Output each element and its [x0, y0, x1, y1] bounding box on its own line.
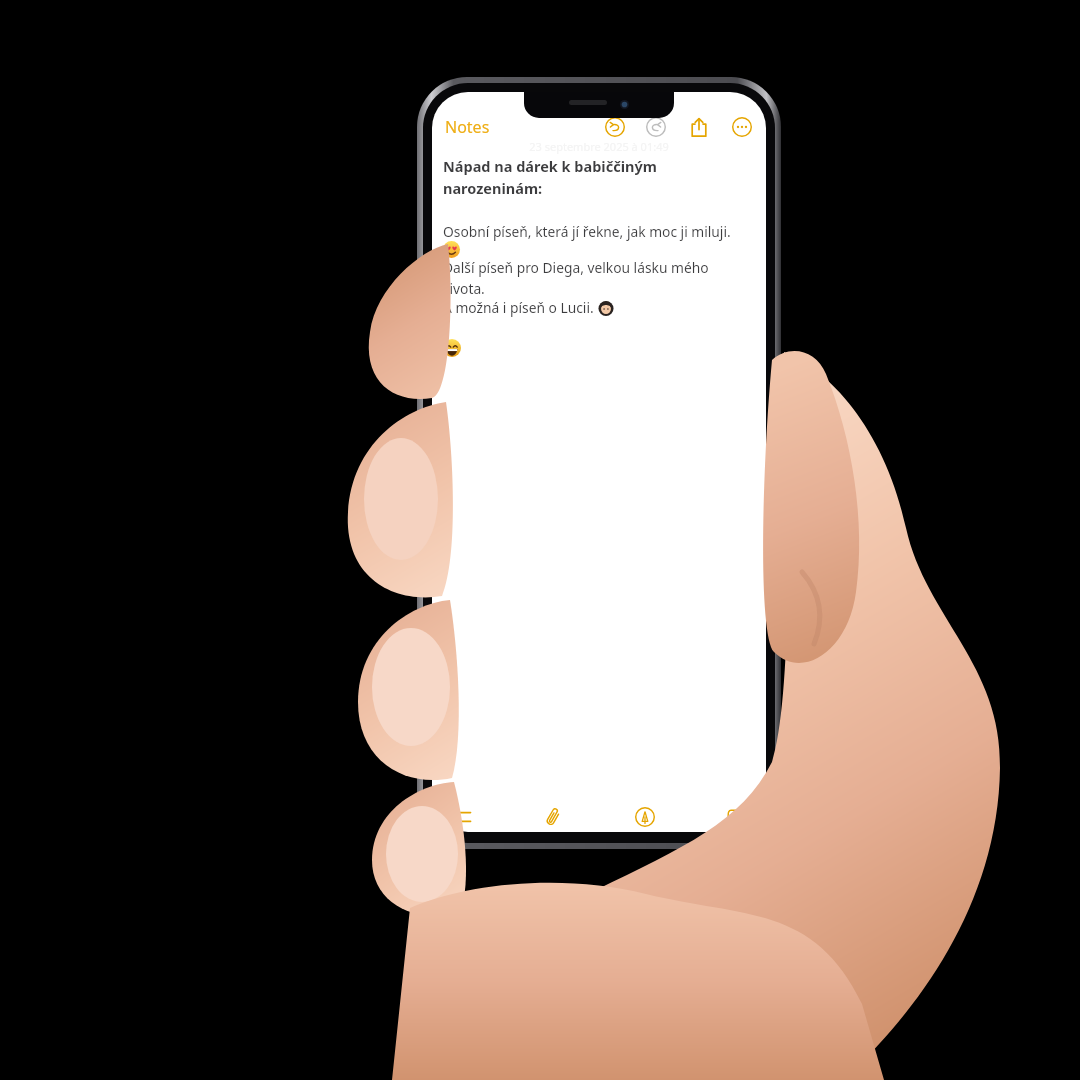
- button[interactable]: Share: [686, 114, 712, 140]
- staticText: Osobní píseň, která jí řekne, jak moc ji…: [443, 222, 731, 241]
- staticText: 23 septembre 2025 à 01:49: [529, 139, 669, 154]
- staticText: A možná i píseň o Lucii.: [443, 298, 598, 317]
- staticText: Notes: [445, 116, 490, 138]
- button[interactable]: More options: [729, 114, 755, 140]
- button[interactable]: Redo: [643, 114, 669, 140]
- staticText: Nápad na dárek k babiččiným narozeninám:: [443, 156, 657, 198]
- button[interactable]: Attach: [540, 804, 566, 830]
- button[interactable]: Markup: [632, 804, 658, 830]
- button[interactable]: Checklist: [448, 804, 474, 830]
- button[interactable]: Notes: [443, 114, 492, 140]
- staticText: Další píseň pro Diega, velkou lásku mého…: [443, 258, 709, 298]
- button[interactable]: New note: [724, 804, 750, 830]
- button[interactable]: Undo: [602, 114, 628, 140]
